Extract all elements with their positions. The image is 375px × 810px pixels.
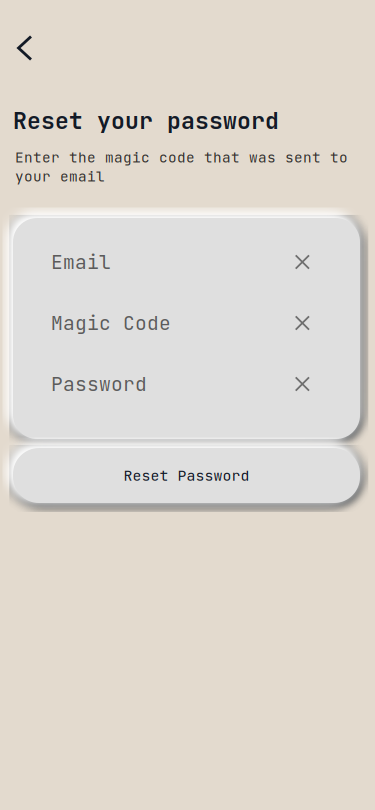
staticText: Email	[51, 249, 111, 275]
button[interactable]: Back	[3, 26, 47, 70]
staticText: Password	[51, 371, 147, 397]
staticText: Enter the magic code that was sent to	[15, 148, 348, 167]
button[interactable]: Reset Password	[13, 448, 360, 503]
button[interactable]: Email	[51, 242, 309, 282]
staticText: your email	[15, 167, 105, 186]
staticText: Magic Code	[51, 310, 171, 336]
staticText: Reset Password	[123, 466, 249, 485]
button[interactable]: Magic Code	[51, 303, 309, 343]
button[interactable]: Password	[51, 364, 309, 404]
staticText: Reset your password	[13, 105, 279, 136]
